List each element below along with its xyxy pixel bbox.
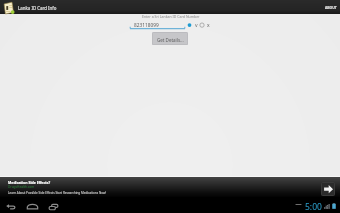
button[interactable]: Home xyxy=(24,200,40,213)
button[interactable]: Get Details... xyxy=(152,32,188,45)
staticText: Enter a Sri Lankan ID Card Number xyxy=(142,14,200,19)
staticText: Learn About Possible Side Effects Start … xyxy=(8,191,107,195)
staticText: 5:00 xyxy=(305,201,322,213)
button[interactable]: Back xyxy=(2,200,19,213)
staticText: DrugsHealth.com xyxy=(8,185,35,189)
staticText: Lanka ID Card Info xyxy=(18,5,57,11)
staticText: Get Details... xyxy=(157,37,184,43)
button[interactable]: 823118099 xyxy=(129,20,186,30)
staticText: V xyxy=(195,23,198,29)
button[interactable]: X xyxy=(198,20,212,30)
button[interactable]: ABOUT xyxy=(322,1,340,13)
button[interactable]: Recent apps xyxy=(45,200,61,213)
button[interactable]: V xyxy=(185,20,199,30)
staticText: ABOUT xyxy=(325,5,337,10)
staticText: Medication Side Effects? xyxy=(8,180,51,185)
staticText: 823118099 xyxy=(134,22,159,29)
button[interactable]: Open ad xyxy=(321,182,335,196)
staticText: X xyxy=(207,23,210,29)
